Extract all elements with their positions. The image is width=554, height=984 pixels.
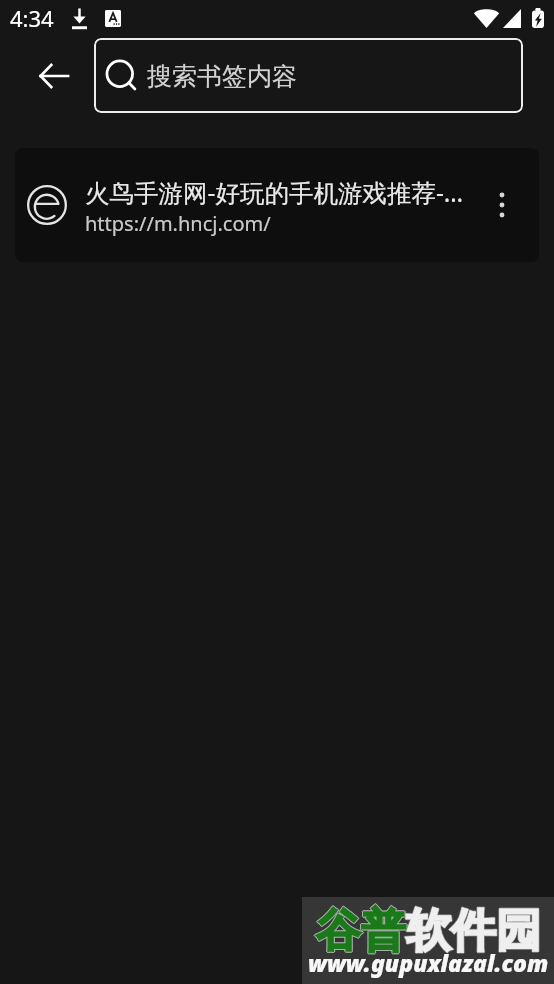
button[interactable]: Back <box>30 52 78 100</box>
staticText: www.gupuxlazal.com <box>308 947 549 978</box>
staticText: 软件园 <box>406 903 541 960</box>
staticText: 火鸟手游网-好玩的手机游戏推荐-… <box>85 176 464 209</box>
staticText: 软件园 <box>405 903 540 960</box>
staticText: 软件园 <box>406 904 541 961</box>
staticText: https://m.hncj.com/ <box>85 210 271 237</box>
button[interactable]: 搜索书签内容 <box>94 38 523 113</box>
staticText: 谷普 <box>315 903 405 960</box>
staticText: 谷普 <box>317 903 407 960</box>
staticText: 谷普 <box>316 903 406 960</box>
staticText: 软件园 <box>407 903 542 960</box>
staticText: 软件园 <box>406 902 541 959</box>
staticText: 谷普 <box>316 902 406 959</box>
staticText: 4:34 <box>10 3 54 33</box>
staticText: 搜索书签内容 <box>147 61 297 92</box>
staticText: 谷普 <box>316 904 406 961</box>
button[interactable]: 火鸟手游网-好玩的手机游戏推荐-… <box>15 148 539 262</box>
button[interactable]: More options <box>479 182 525 228</box>
